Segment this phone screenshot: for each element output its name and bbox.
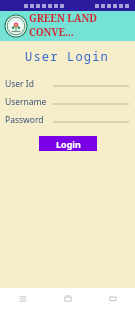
button[interactable]: Home: [45, 288, 90, 310]
button[interactable]: Login: [39, 136, 97, 151]
button[interactable]: User Id: [0, 75, 135, 93]
staticText: Password: [5, 114, 44, 126]
button[interactable]: Password: [0, 111, 135, 129]
staticText: Login: [56, 138, 81, 150]
staticText: User Id: [5, 78, 34, 90]
staticText: GREEN LAND CONVE...: [29, 11, 135, 39]
staticText: Username: [5, 96, 47, 108]
button[interactable]: Username: [0, 93, 135, 111]
staticText: User Login: [25, 48, 110, 64]
button[interactable]: Back: [90, 288, 135, 310]
button[interactable]: Recents: [0, 288, 45, 310]
